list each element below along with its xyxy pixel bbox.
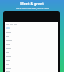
button[interactable] bbox=[6, 46, 58, 50]
button[interactable]: Selected filter bbox=[6, 27, 10, 29]
button[interactable] bbox=[6, 70, 58, 72]
button[interactable] bbox=[6, 54, 58, 58]
button[interactable] bbox=[6, 66, 58, 70]
button[interactable] bbox=[6, 34, 58, 38]
button[interactable] bbox=[6, 50, 58, 54]
button[interactable] bbox=[6, 30, 58, 34]
button[interactable] bbox=[6, 42, 58, 46]
button[interactable] bbox=[6, 38, 58, 42]
button[interactable] bbox=[6, 62, 58, 66]
staticText: Meet & greet bbox=[20, 1, 44, 6]
button[interactable] bbox=[6, 58, 58, 62]
staticText: Get to know your team, one at a time bbox=[16, 7, 49, 10]
